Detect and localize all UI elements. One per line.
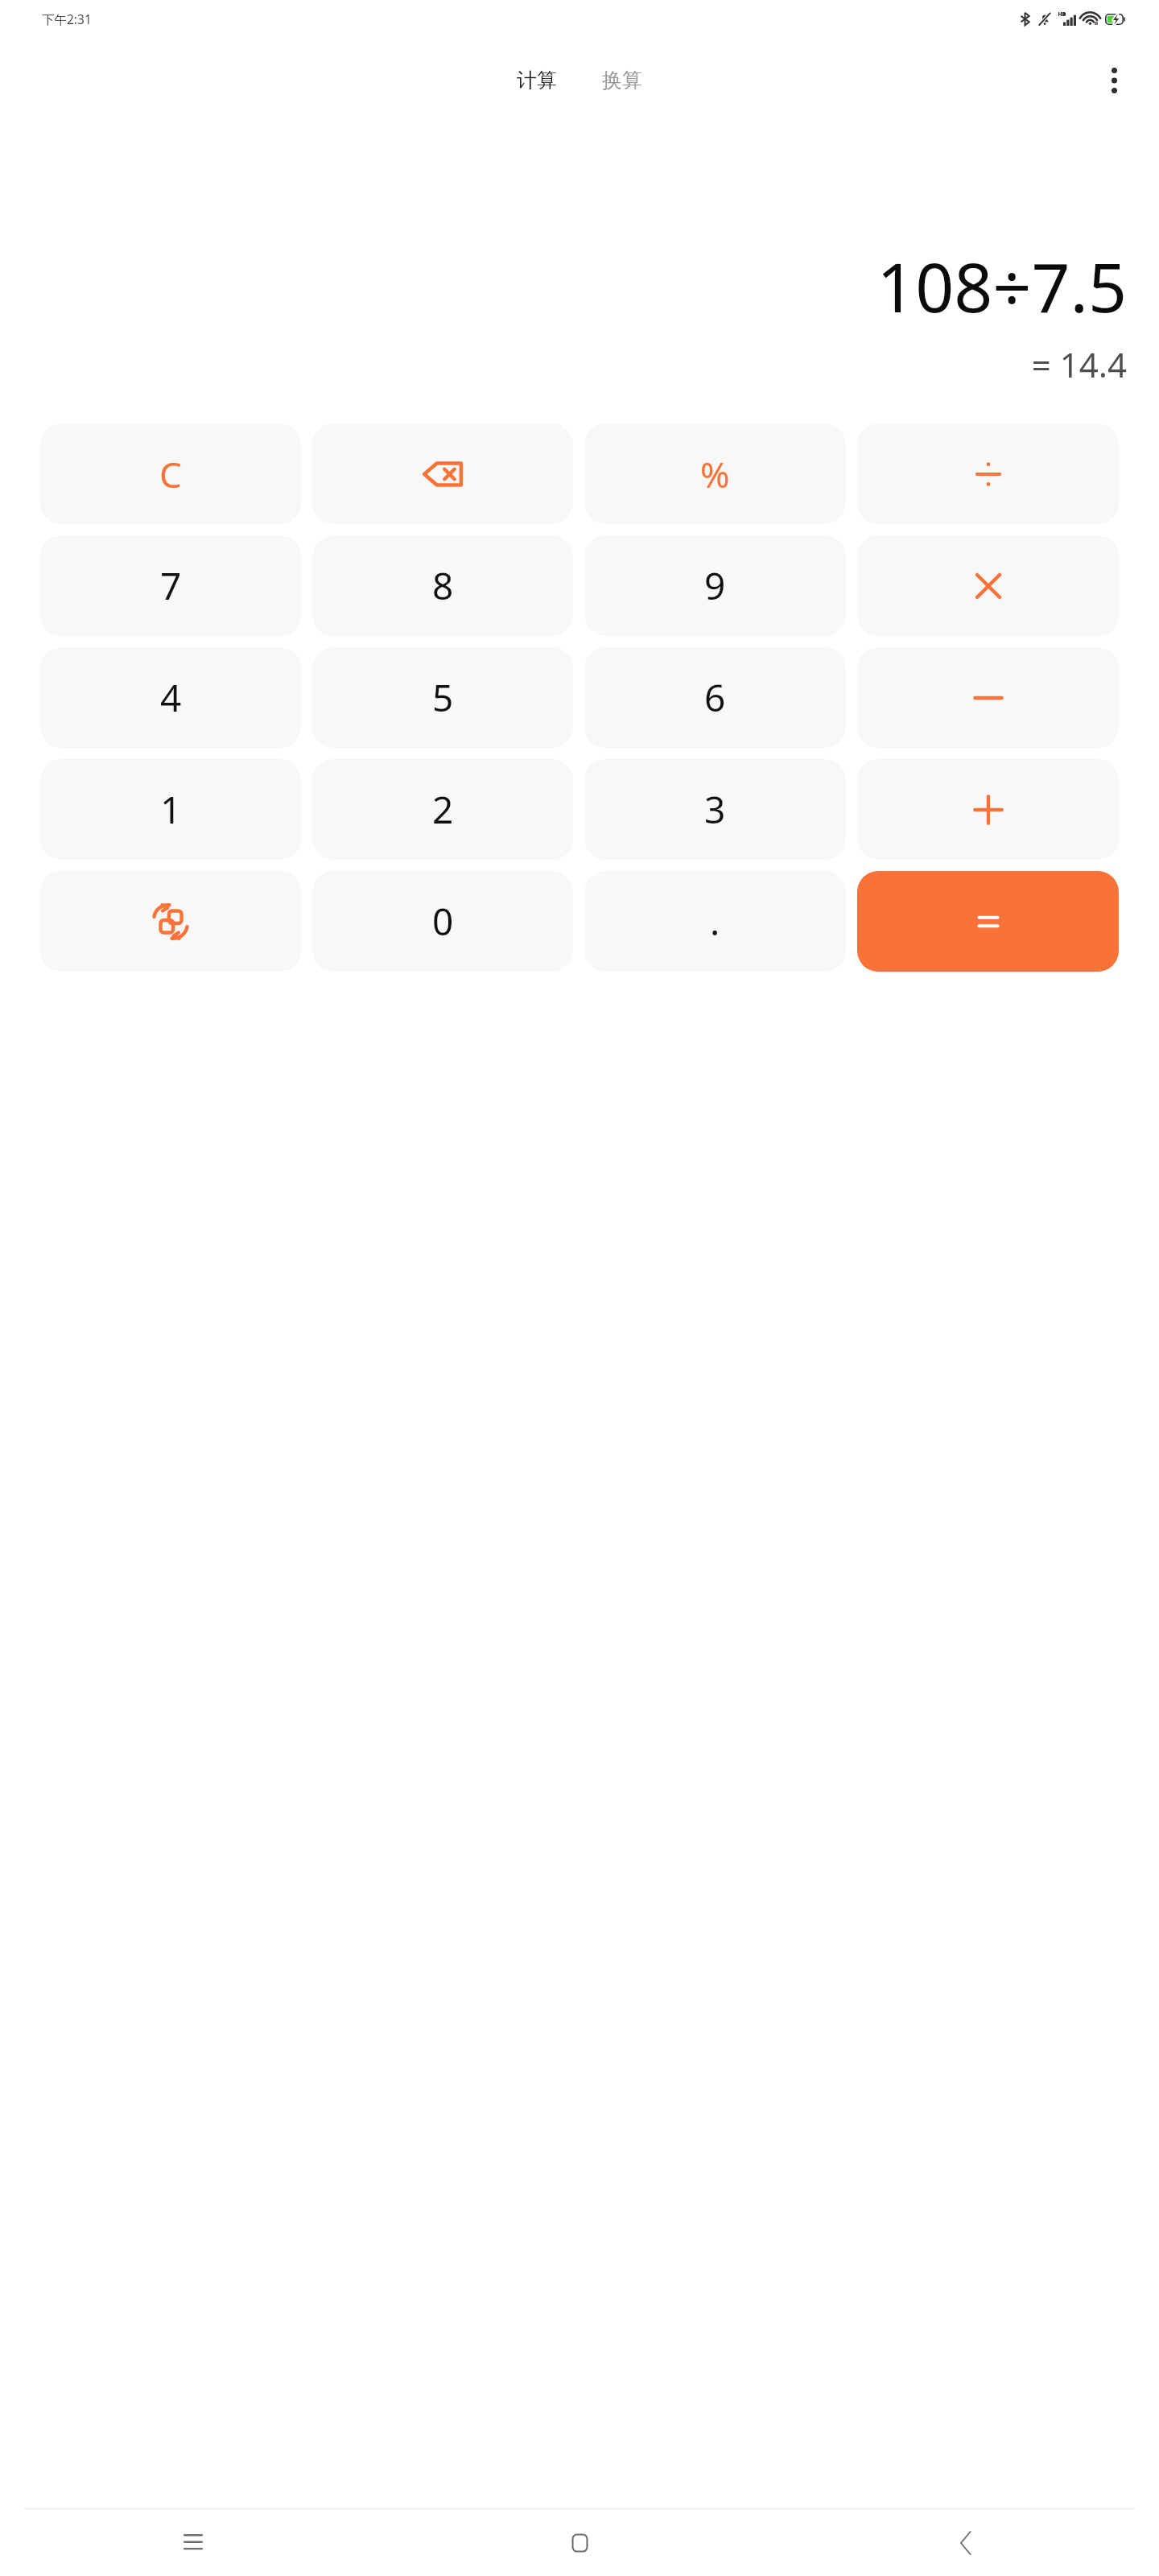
staticText: 0: [432, 896, 454, 947]
staticText: 1: [160, 784, 182, 835]
button[interactable]: 2: [312, 759, 573, 860]
staticText: 7: [160, 560, 182, 611]
button[interactable]: 8: [312, 535, 573, 636]
button[interactable]: 7: [40, 535, 301, 636]
button[interactable]: Recents: [0, 2509, 386, 2576]
button[interactable]: Multiply: [857, 535, 1119, 636]
button[interactable]: 换算: [594, 63, 650, 97]
button[interactable]: Plus: [857, 759, 1119, 860]
staticText: 下午2:31: [42, 10, 92, 27]
button[interactable]: Equals: [857, 871, 1119, 972]
staticText: 换算: [602, 68, 642, 93]
staticText: 4: [160, 672, 182, 723]
button[interactable]: Minus: [857, 647, 1119, 748]
staticText: 2: [432, 784, 454, 835]
button[interactable]: 3: [584, 759, 846, 860]
staticText: 8: [432, 560, 454, 611]
staticText: 9: [704, 560, 726, 611]
button[interactable]: 9: [584, 535, 846, 636]
staticText: 108÷7.5: [876, 240, 1127, 332]
button[interactable]: 6: [584, 647, 846, 748]
button[interactable]: 4: [40, 647, 301, 748]
button[interactable]: 5: [312, 647, 573, 748]
staticText: 6: [704, 672, 726, 723]
button[interactable]: .: [584, 871, 846, 972]
staticText: 5: [432, 672, 454, 723]
button[interactable]: C: [40, 423, 301, 524]
button[interactable]: 0: [312, 871, 573, 972]
staticText: 计算: [517, 68, 557, 93]
staticText: 3: [704, 784, 726, 835]
staticText: = 14.4: [1031, 341, 1127, 387]
button[interactable]: Divide: [857, 423, 1119, 524]
button[interactable]: Home: [386, 2509, 773, 2576]
staticText: C: [159, 450, 182, 498]
button[interactable]: Unit converter: [40, 871, 301, 972]
staticText: .: [710, 896, 720, 947]
button[interactable]: 1: [40, 759, 301, 860]
staticText: %: [700, 450, 730, 498]
button[interactable]: Back: [773, 2509, 1159, 2576]
button[interactable]: 计算: [509, 63, 565, 97]
button[interactable]: Backspace: [312, 423, 573, 524]
button[interactable]: More options: [1091, 58, 1136, 103]
button[interactable]: %: [584, 423, 846, 524]
